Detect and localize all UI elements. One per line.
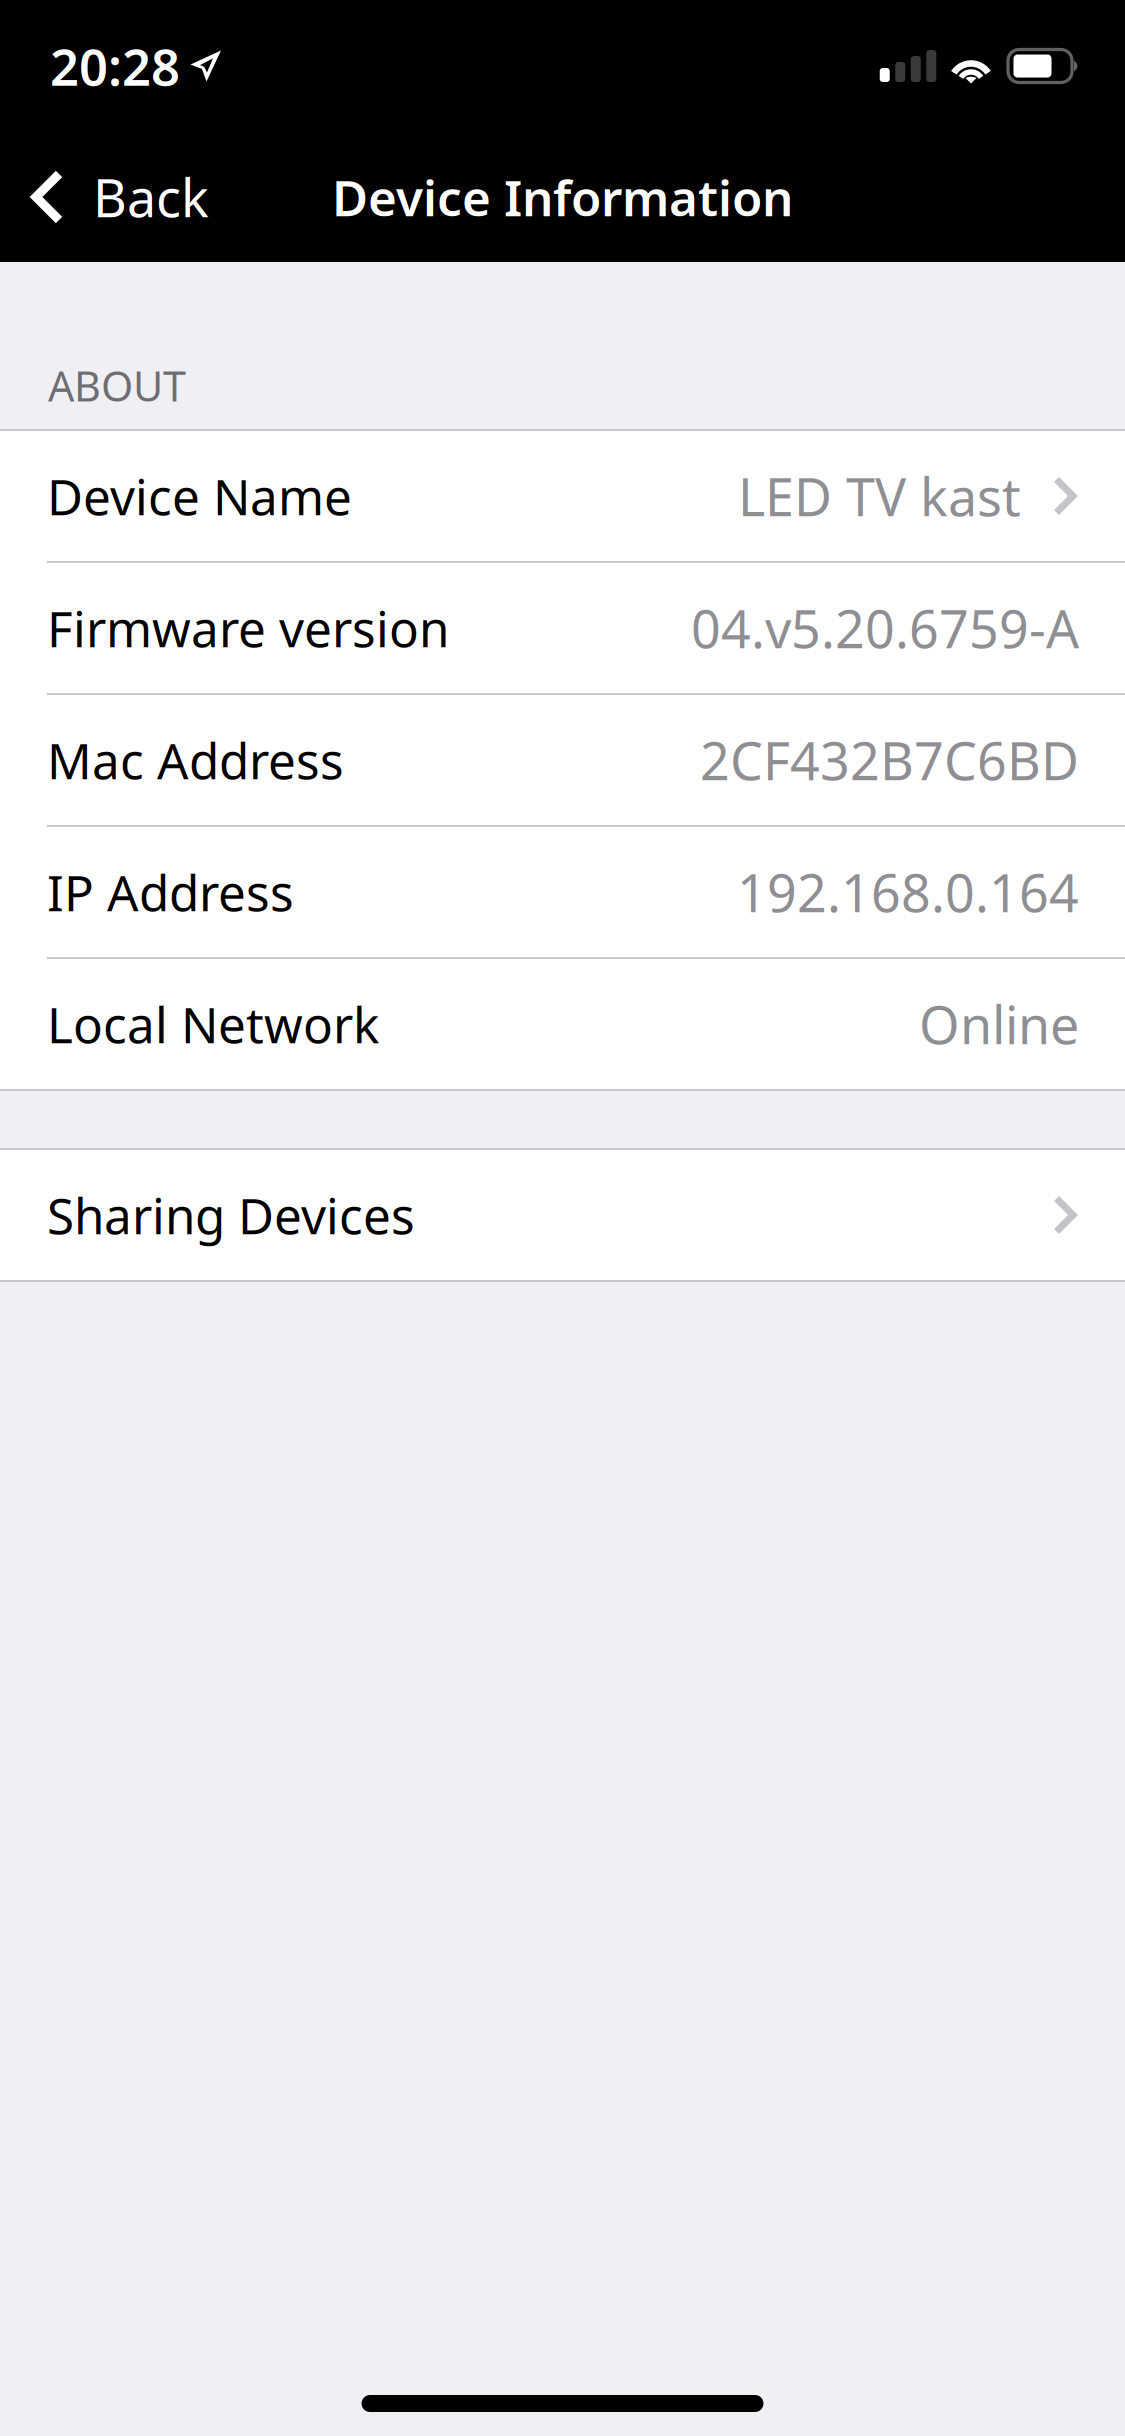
staticText: 20:28 <box>50 32 180 100</box>
staticText: Back <box>93 162 209 232</box>
staticText: Local Network <box>47 991 379 1057</box>
staticText: Sharing Devices <box>47 1182 415 1248</box>
staticText: Online <box>919 989 1079 1059</box>
button[interactable]: Firmware version <box>0 563 1125 693</box>
staticText: Mac Address <box>47 727 344 793</box>
button[interactable]: Device Name <box>0 431 1125 561</box>
staticText: LED TV kast <box>738 461 1021 531</box>
staticText: Device Information <box>332 164 793 230</box>
staticText: ABOUT <box>48 358 186 413</box>
staticText: IP Address <box>47 859 294 925</box>
button[interactable]: Sharing Devices <box>0 1150 1125 1280</box>
staticText: 2CF432B7C6BD <box>700 725 1079 795</box>
button[interactable]: Local Network <box>0 959 1125 1089</box>
button[interactable]: Mac Address <box>0 695 1125 825</box>
staticText: Firmware version <box>47 595 449 661</box>
staticText: 04.v5.20.6759-A <box>691 593 1079 663</box>
staticText: 192.168.0.164 <box>737 857 1079 927</box>
button[interactable]: IP Address <box>0 827 1125 957</box>
staticText: Device Name <box>47 463 352 529</box>
button[interactable]: Back <box>0 132 233 262</box>
